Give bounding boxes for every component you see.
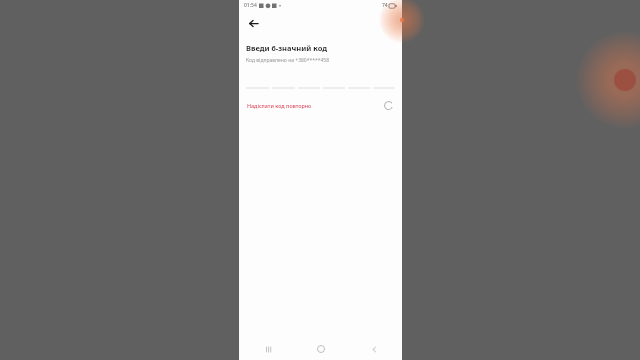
staticText: Введи 6-значний код	[246, 43, 328, 53]
staticText: Код відправлено на +380*****458	[246, 57, 330, 64]
staticText: 01:54	[244, 2, 257, 9]
button[interactable]: Надіслати код повторно	[246, 100, 313, 111]
button[interactable]: Back	[363, 338, 385, 360]
button[interactable]: Code digit	[272, 78, 295, 89]
button[interactable]: Recents	[257, 338, 279, 360]
button[interactable]: Back	[244, 14, 262, 32]
button[interactable]: Code digit	[373, 78, 395, 89]
button[interactable]: Code digit	[298, 78, 320, 89]
button[interactable]: Code digit	[323, 78, 345, 89]
button[interactable]: Home	[310, 338, 332, 360]
staticText: Надіслати код повторно	[247, 102, 312, 109]
button[interactable]: Code digit	[246, 78, 269, 89]
staticText: 74	[382, 2, 388, 9]
button[interactable]: Code digit	[348, 78, 370, 89]
other: Loading	[381, 98, 395, 112]
